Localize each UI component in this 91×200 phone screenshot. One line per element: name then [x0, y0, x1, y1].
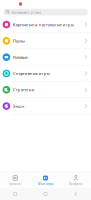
- staticText: Великий Суглан: [11, 9, 40, 15]
- button[interactable]: Каталог: [0, 172, 30, 188]
- staticText: Экшн: [13, 103, 25, 109]
- button[interactable]: Карточные и настольные игры: [0, 17, 91, 33]
- staticText: Профиль: [69, 182, 83, 186]
- staticText: Мои игры: [38, 182, 53, 186]
- button[interactable]: Профиль: [61, 172, 91, 188]
- button[interactable]: Ролевые: [0, 49, 91, 65]
- button[interactable]: Экшн: [0, 98, 91, 114]
- button[interactable]: Recent apps: [0, 188, 30, 200]
- button[interactable]: Пазлы: [0, 33, 91, 49]
- button[interactable]: Мои игры: [30, 172, 61, 188]
- button[interactable]: Стратегии: [0, 82, 91, 98]
- staticText: Карточные и настольные игры: [13, 22, 74, 27]
- button[interactable]: Home: [30, 188, 61, 200]
- button[interactable]: Спортивные игры: [0, 65, 91, 82]
- staticText: Пазлы: [13, 38, 25, 44]
- button[interactable]: Back: [61, 188, 91, 200]
- staticText: Ролевые: [13, 54, 28, 60]
- staticText: Каталог: [9, 182, 21, 186]
- button[interactable]: Великий Суглан: [3, 9, 88, 15]
- staticText: Спортивные игры: [13, 71, 50, 76]
- staticText: Стратегии: [13, 87, 35, 92]
